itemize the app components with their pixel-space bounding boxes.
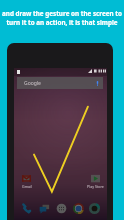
button[interactable]: Chrome bbox=[73, 203, 84, 214]
button[interactable]: Google bbox=[17, 77, 103, 89]
button[interactable]: Apps bbox=[56, 203, 67, 214]
button[interactable]: Messages bbox=[39, 203, 50, 214]
staticText: turn it to an action, it is that simple bbox=[6, 18, 118, 27]
staticText: and draw the gesture on the screen to bbox=[2, 9, 122, 18]
button[interactable]: Phone bbox=[21, 203, 32, 214]
staticText: Gmail bbox=[22, 184, 32, 189]
button[interactable]: Play Store bbox=[86, 174, 105, 188]
staticText: Google bbox=[24, 80, 41, 87]
button[interactable]: Gmail bbox=[17, 174, 36, 188]
staticText: Play Store bbox=[87, 184, 104, 189]
button[interactable]: Camera bbox=[89, 203, 100, 214]
